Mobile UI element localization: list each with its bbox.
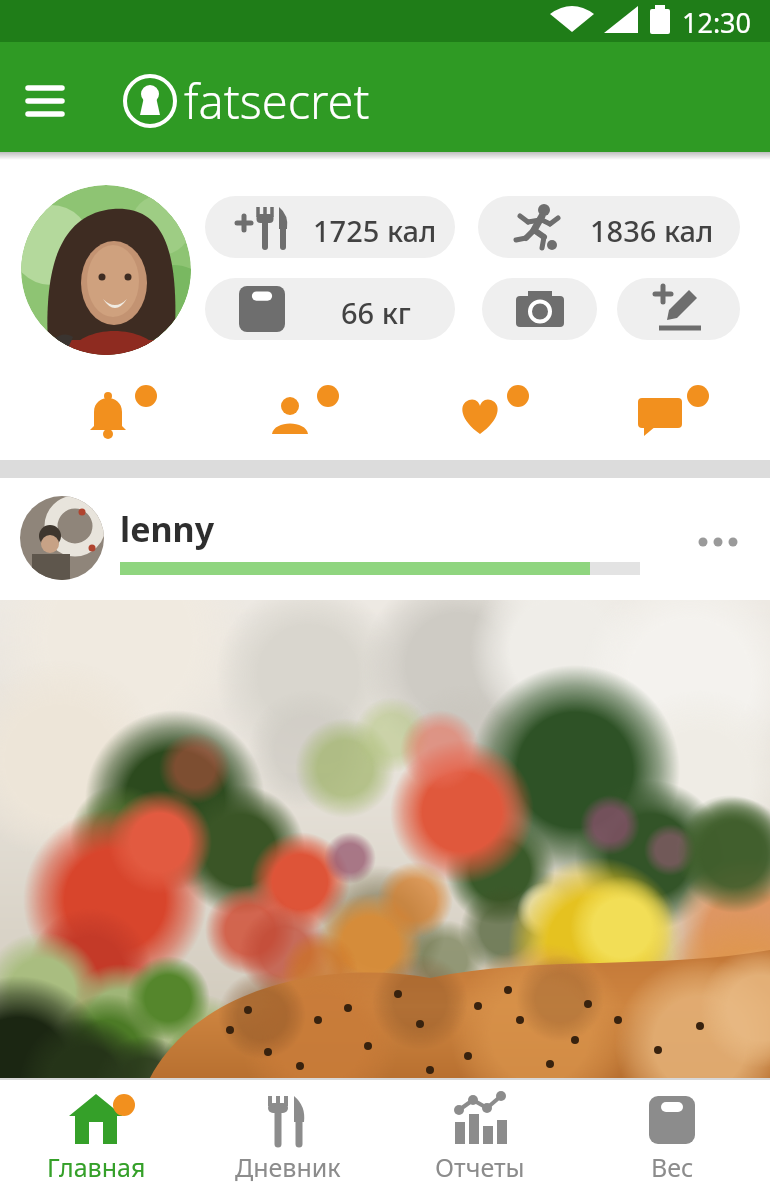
staticText: 12:30 <box>682 4 752 41</box>
staticText: 66 кг <box>341 293 411 332</box>
button[interactable]: Вес <box>576 1080 768 1184</box>
staticText: 1725 кал <box>313 211 437 250</box>
button[interactable]: 1725 кал <box>205 196 455 258</box>
staticText: Вес <box>651 1150 694 1184</box>
button[interactable]: Главная <box>0 1080 192 1184</box>
staticText: fatsecret <box>184 69 370 133</box>
button[interactable]: lenny <box>0 478 770 600</box>
button[interactable]: 66 кг <box>205 278 455 340</box>
button[interactable] <box>698 536 738 548</box>
button[interactable] <box>18 83 72 119</box>
button[interactable] <box>482 278 597 340</box>
button[interactable] <box>448 382 532 448</box>
button[interactable] <box>617 278 740 340</box>
button[interactable]: Отчеты <box>384 1080 576 1184</box>
button[interactable] <box>21 185 191 355</box>
button[interactable] <box>628 382 712 448</box>
button[interactable] <box>76 382 160 448</box>
staticText: Главная <box>47 1150 146 1184</box>
staticText: Дневник <box>235 1150 341 1184</box>
button[interactable] <box>258 382 342 448</box>
staticText: Отчеты <box>435 1150 525 1184</box>
staticText: 1836 кал <box>590 211 714 250</box>
button[interactable]: 1836 кал <box>478 196 740 258</box>
staticText: lenny <box>120 506 215 552</box>
button[interactable] <box>0 600 770 1078</box>
button[interactable]: Дневник <box>192 1080 384 1184</box>
